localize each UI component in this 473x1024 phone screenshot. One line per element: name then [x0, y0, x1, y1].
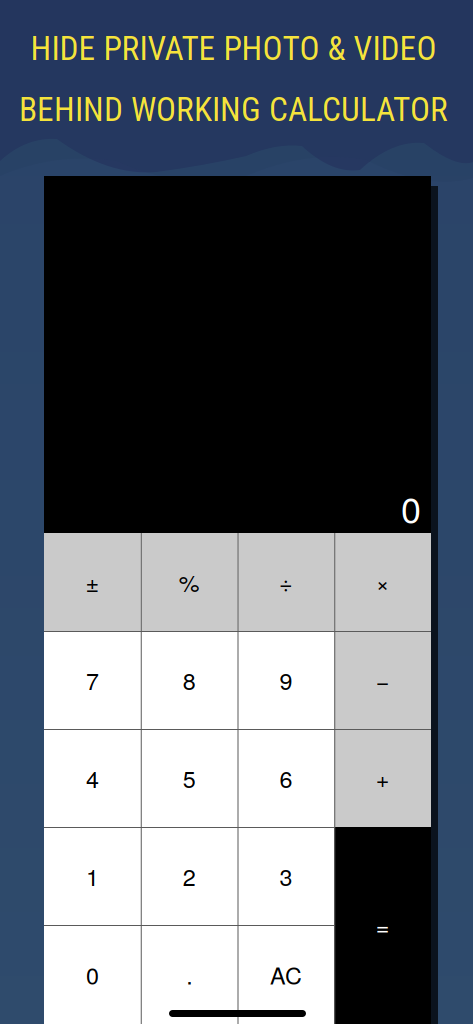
button[interactable]: ×	[334, 533, 431, 631]
button[interactable]: ±	[44, 533, 141, 631]
button[interactable]: 2	[141, 827, 238, 925]
staticText: HIDE PRIVATE PHOTO & VIDEO	[30, 29, 436, 68]
button[interactable]: =	[334, 827, 431, 1024]
staticText: 3	[279, 859, 292, 893]
button[interactable]: 1	[44, 827, 141, 925]
button[interactable]: 4	[44, 729, 141, 827]
staticText: 0	[401, 482, 421, 534]
button[interactable]: 0	[44, 925, 141, 1024]
staticText: AC	[270, 958, 302, 991]
staticText: 2	[183, 859, 196, 893]
staticText: 5	[183, 761, 196, 795]
staticText: 9	[279, 663, 292, 697]
button[interactable]: %	[141, 533, 238, 631]
staticText: −	[376, 663, 390, 697]
staticText: ÷	[279, 565, 293, 599]
button[interactable]: 3	[237, 827, 334, 925]
staticText: 1	[86, 859, 99, 893]
staticText: BEHIND WORKING CALCULATOR	[19, 90, 448, 129]
button[interactable]: 6	[237, 729, 334, 827]
staticText: 8	[183, 663, 196, 697]
button[interactable]: 5	[141, 729, 238, 827]
staticText: ±	[85, 565, 99, 599]
button[interactable]: 7	[44, 631, 141, 729]
staticText: %	[179, 565, 200, 599]
button[interactable]: .	[141, 925, 238, 1024]
staticText: 4	[86, 761, 99, 795]
button[interactable]: 8	[141, 631, 238, 729]
staticText: =	[376, 909, 390, 942]
button[interactable]: AC	[237, 925, 334, 1024]
staticText: 6	[279, 761, 292, 795]
button[interactable]: +	[334, 729, 431, 827]
staticText: 7	[86, 663, 99, 697]
staticText: 0	[86, 958, 99, 991]
staticText: .	[186, 958, 192, 991]
staticText: +	[376, 761, 390, 795]
button[interactable]: 9	[237, 631, 334, 729]
staticText: ×	[376, 565, 390, 599]
button[interactable]: ÷	[237, 533, 334, 631]
button[interactable]: −	[334, 631, 431, 729]
